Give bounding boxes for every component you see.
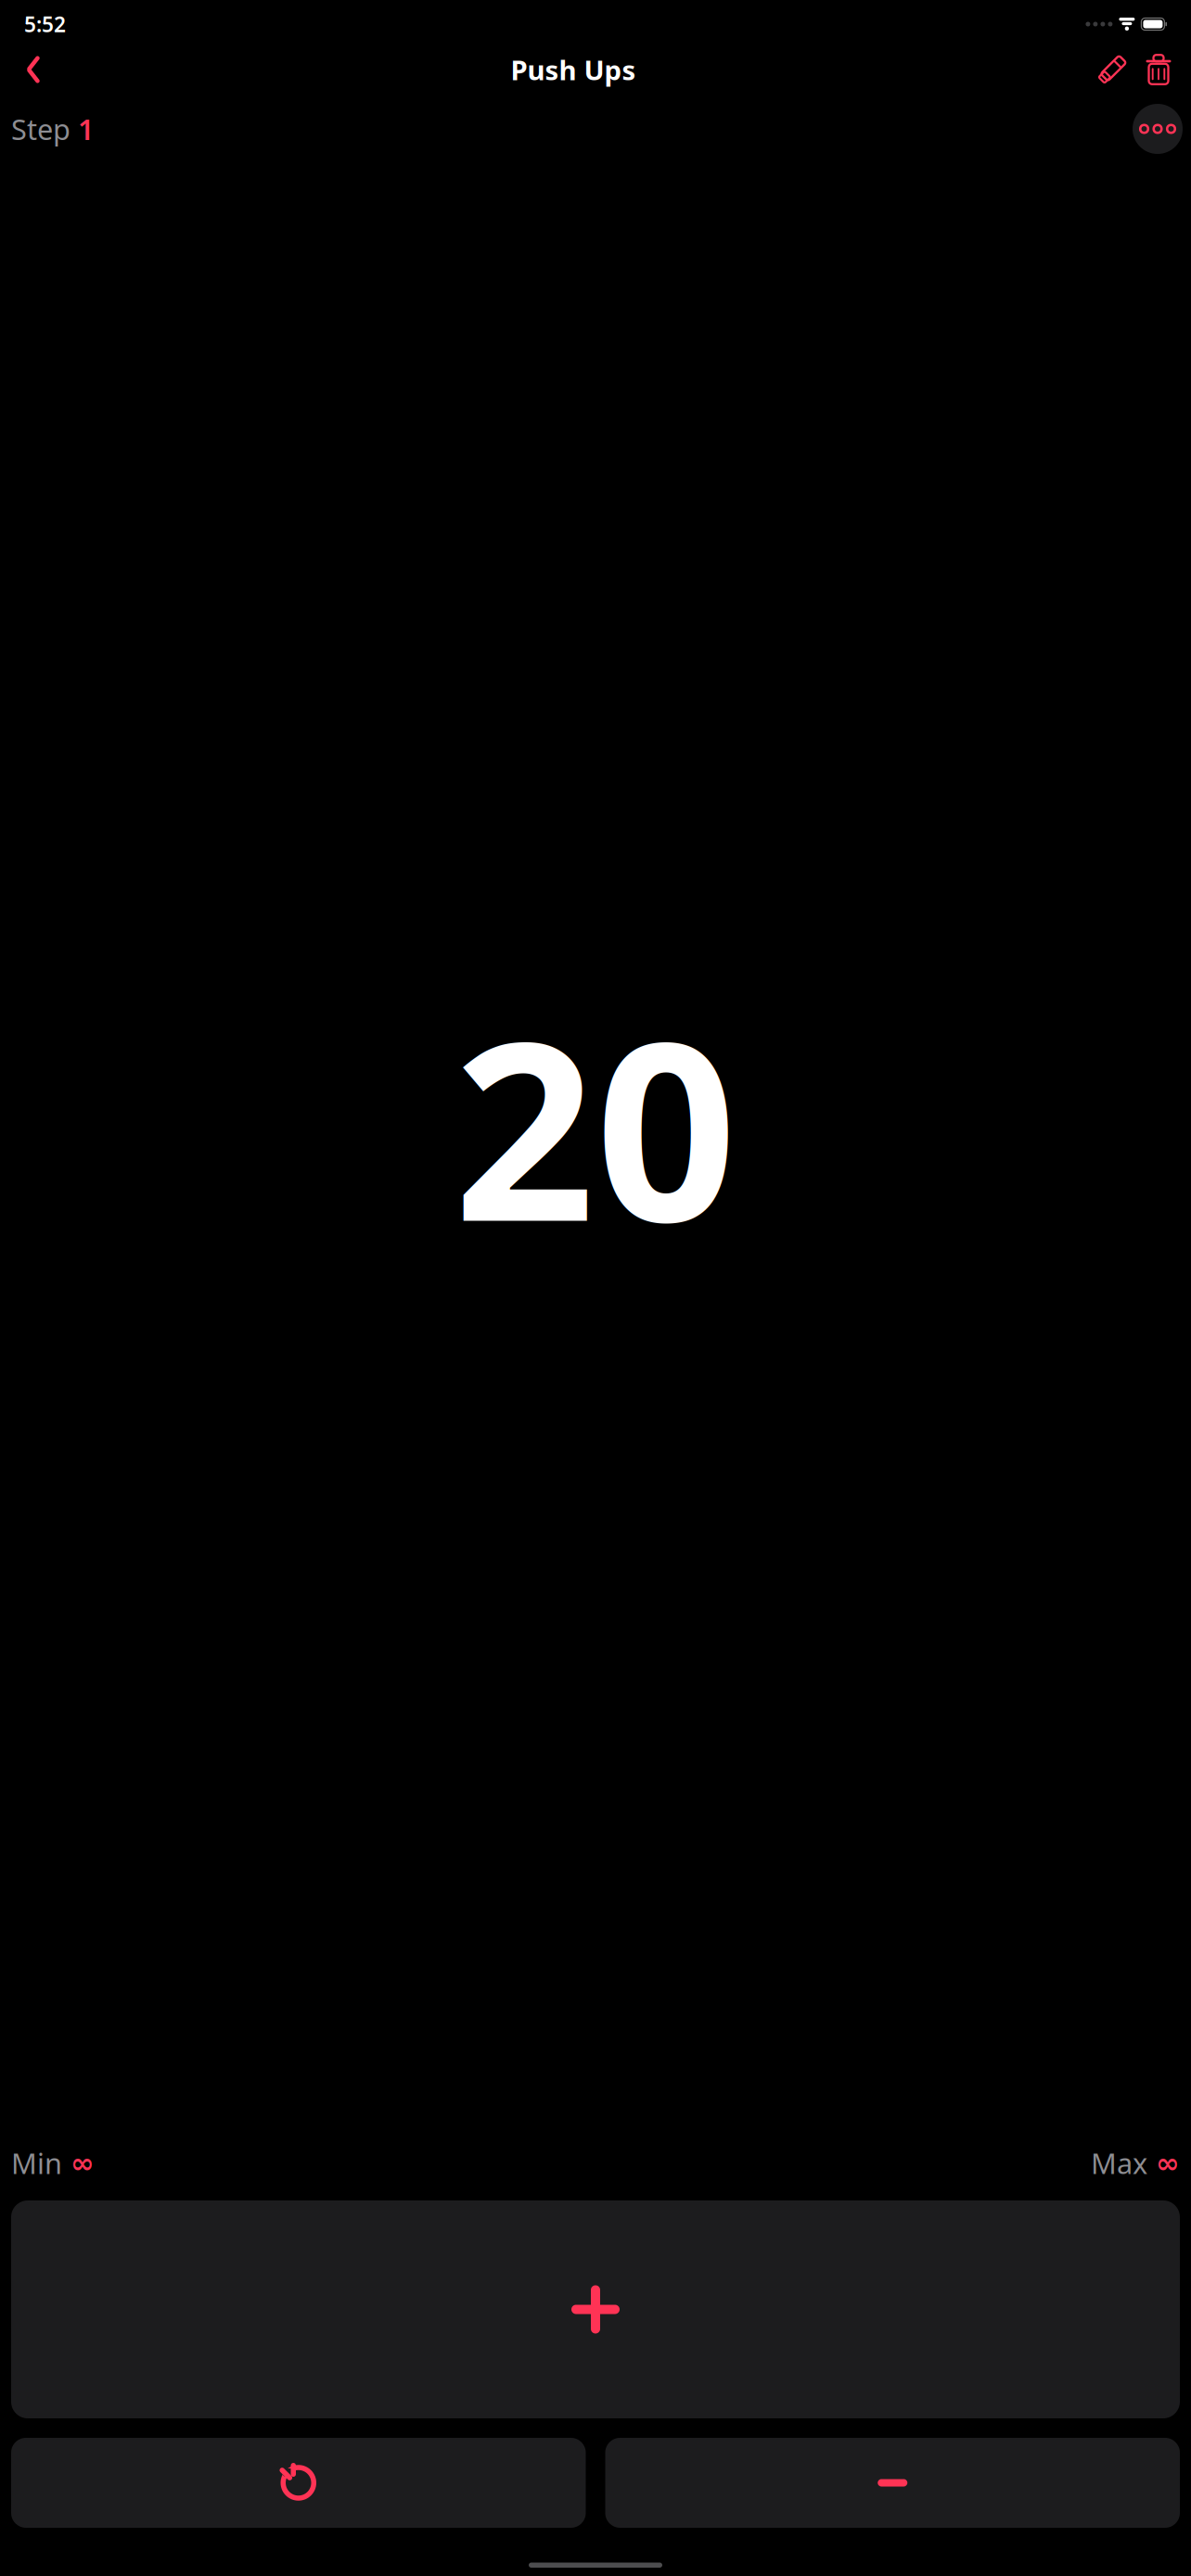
button[interactable]: Delete	[1135, 45, 1182, 94]
staticText: Push Ups	[511, 51, 636, 88]
staticText: Min	[11, 2144, 62, 2182]
staticText: 1	[78, 110, 95, 148]
staticText: 5:52	[24, 10, 66, 38]
button[interactable]: Edit	[1089, 45, 1135, 94]
staticText: ∞	[70, 2147, 95, 2179]
staticText: ∞	[1156, 2147, 1180, 2179]
button[interactable]: Reset	[11, 2438, 586, 2528]
staticText: Step	[11, 110, 70, 148]
button[interactable]: Max	[1091, 2139, 1180, 2187]
staticText: 20	[454, 961, 737, 1289]
button[interactable]: More options	[1131, 102, 1185, 156]
button[interactable]: Increment	[11, 2200, 1180, 2418]
staticText: Max	[1091, 2144, 1147, 2182]
button[interactable]: Decrement	[605, 2438, 1180, 2528]
button[interactable]: Min	[11, 2139, 95, 2187]
button[interactable]: Back	[9, 45, 58, 94]
